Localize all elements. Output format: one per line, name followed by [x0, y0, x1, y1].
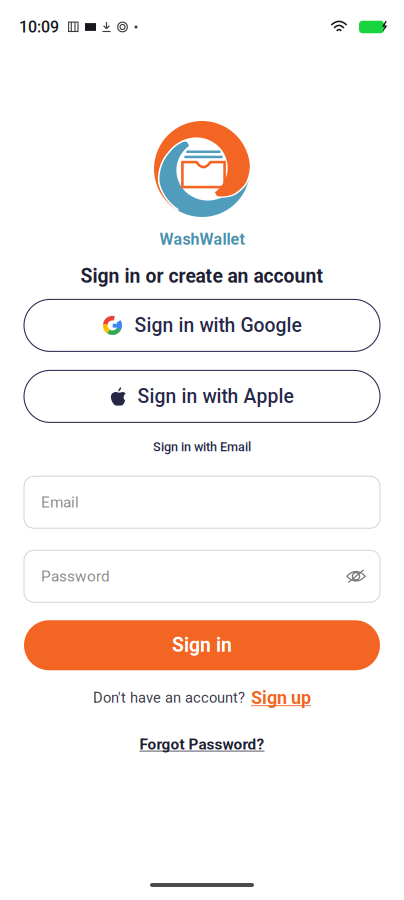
- button[interactable]: Sign in with Google: [24, 299, 380, 351]
- button[interactable]: Sign up: [251, 687, 311, 708]
- staticText: Forgot Password?: [139, 735, 264, 753]
- staticText: WashWallet: [159, 230, 244, 249]
- staticText: Sign in or create an account: [80, 265, 323, 287]
- staticText: Sign in with Email: [153, 439, 251, 454]
- button[interactable]: Forgot Password?: [139, 735, 264, 753]
- staticText: Sign in: [172, 634, 232, 657]
- staticText: Sign in with Google: [134, 314, 301, 337]
- staticText: 10:09: [19, 18, 59, 36]
- staticText: Sign in with Apple: [137, 385, 293, 408]
- button[interactable]: Sign in: [24, 620, 380, 670]
- staticText: Sign up: [251, 687, 311, 708]
- staticText: Don't have an account?: [93, 689, 245, 706]
- staticText: Email: [41, 493, 79, 511]
- button[interactable]: Email: [24, 476, 380, 528]
- button[interactable]: Sign in with Apple: [24, 370, 380, 422]
- staticText: Password: [41, 567, 110, 585]
- button[interactable]: Password: [24, 550, 380, 602]
